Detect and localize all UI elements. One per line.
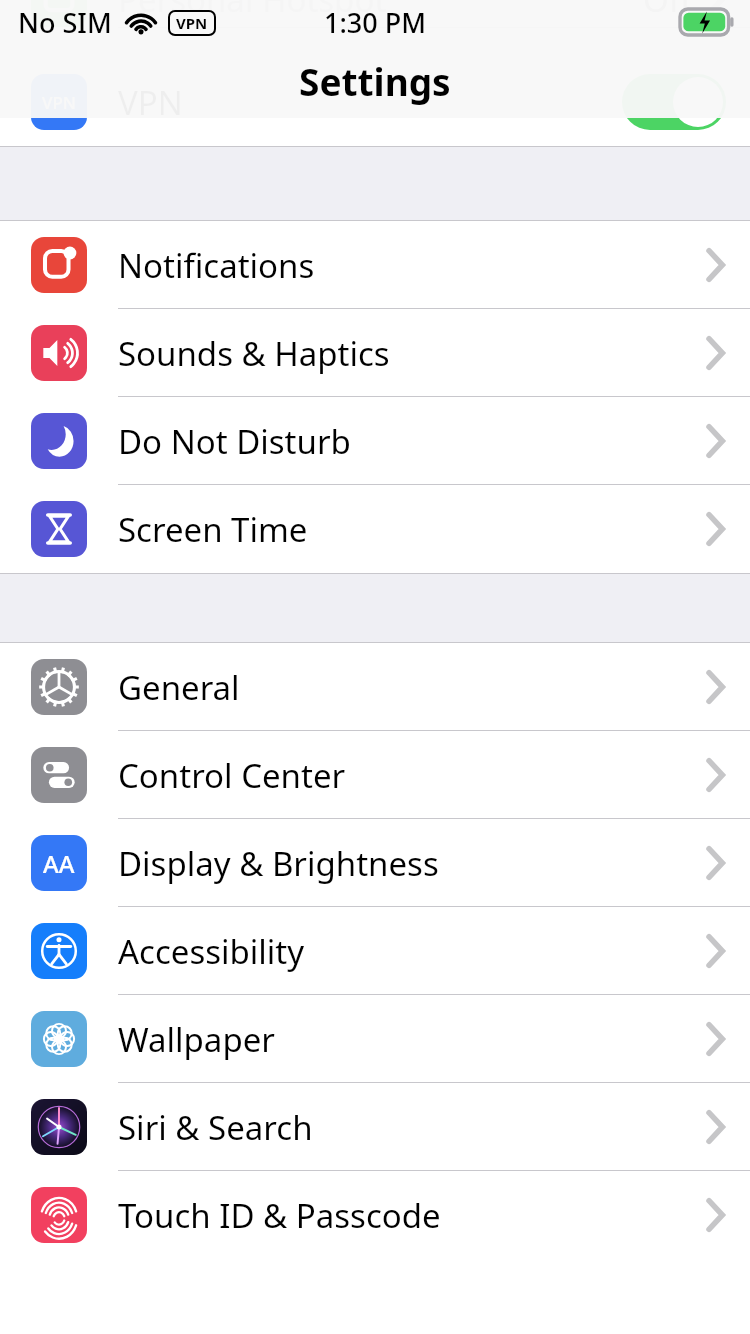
- staticText: Notifications: [118, 243, 315, 288]
- staticText: VPN: [42, 91, 77, 114]
- staticText: Off: [643, 0, 692, 22]
- staticText: Siri & Search: [118, 1105, 313, 1150]
- button[interactable]: Do Not Disturb: [0, 397, 750, 485]
- staticText: Control Center: [118, 753, 346, 798]
- button[interactable]: VPN: [0, 58, 750, 146]
- button[interactable]: Touch ID & Passcode: [0, 1171, 750, 1259]
- button[interactable]: Notifications: [0, 221, 750, 309]
- button[interactable]: Control Center: [0, 731, 750, 819]
- button[interactable]: Screen Time: [0, 485, 750, 573]
- staticText: Touch ID & Passcode: [118, 1193, 441, 1238]
- staticText: Screen Time: [118, 507, 308, 552]
- staticText: General: [118, 665, 240, 710]
- button[interactable]: VPN toggle: [622, 74, 726, 130]
- staticText: Sounds & Haptics: [118, 331, 390, 376]
- staticText: AA: [43, 847, 75, 880]
- staticText: No SIM: [18, 4, 112, 41]
- staticText: VPN: [176, 13, 208, 33]
- staticText: Do Not Disturb: [118, 419, 351, 464]
- staticText: Accessibility: [118, 929, 305, 974]
- staticText: Settings: [299, 56, 451, 106]
- button[interactable]: Accessibility: [0, 907, 750, 995]
- button[interactable]: Siri & Search: [0, 1083, 750, 1171]
- staticText: Wallpaper: [118, 1017, 275, 1062]
- button[interactable]: Personal Hotspot: [0, 0, 750, 28]
- button[interactable]: Display & Brightness: [0, 819, 750, 907]
- staticText: 1:30 PM: [324, 4, 426, 41]
- button[interactable]: Sounds & Haptics: [0, 309, 750, 397]
- staticText: Personal Hotspot: [118, 0, 387, 22]
- button[interactable]: Wallpaper: [0, 995, 750, 1083]
- staticText: VPN: [118, 80, 183, 125]
- staticText: Display & Brightness: [118, 841, 439, 886]
- button[interactable]: General: [0, 643, 750, 731]
